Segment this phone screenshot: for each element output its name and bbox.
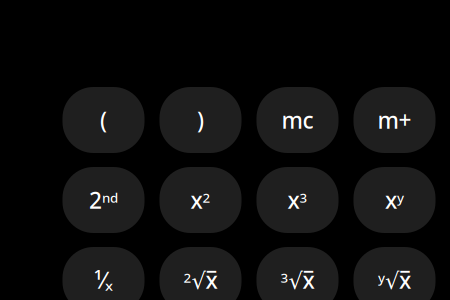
button[interactable]: One over x [62,247,144,300]
staticText: 2nd [89,185,118,215]
button[interactable]: Second function [62,167,144,233]
button[interactable]: Memory add [353,87,435,153]
staticText: ¹⁄ₓ [94,265,113,295]
button[interactable]: Memory clear [256,87,338,153]
staticText: ( [100,105,107,135]
button[interactable]: Close parenthesis [159,87,241,153]
button[interactable]: x cubed [256,167,338,233]
button[interactable]: Square root of x [159,247,241,300]
staticText: 2√x̅ [183,265,217,295]
staticText: mc [281,105,313,135]
staticText: x3 [287,185,307,215]
staticText: xy [385,185,404,215]
staticText: ) [197,105,204,135]
button[interactable]: y-th root of x [353,247,435,300]
staticText: x2 [190,185,210,215]
button[interactable]: x to the power of y [353,167,435,233]
button[interactable]: Cube root of x [256,247,338,300]
staticText: m+ [377,105,411,135]
staticText: 3√x̅ [280,265,314,295]
staticText: y√x̅ [378,265,411,295]
button[interactable]: Open parenthesis [62,87,144,153]
button[interactable]: x squared [159,167,241,233]
